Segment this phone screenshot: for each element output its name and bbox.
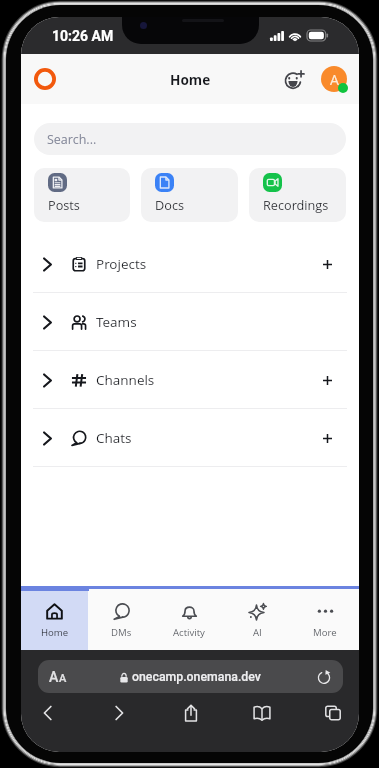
- button[interactable]: Share: [177, 699, 204, 726]
- button[interactable]: Chats: [21, 409, 359, 466]
- staticText: Search...: [47, 131, 97, 148]
- button[interactable]: Search...: [34, 123, 346, 155]
- staticText: A: [59, 672, 67, 685]
- button[interactable]: Teams: [21, 293, 359, 350]
- button[interactable]: Add Chats: [314, 425, 340, 451]
- staticText: Chats: [96, 429, 132, 447]
- staticText: Channels: [96, 371, 155, 389]
- button[interactable]: Bookmarks: [248, 699, 275, 726]
- button[interactable]: Docs: [141, 168, 238, 222]
- staticText: Home: [41, 626, 69, 639]
- button[interactable]: Add Projects: [314, 251, 340, 277]
- button[interactable]: Back: [34, 699, 61, 726]
- button[interactable]: Home: [21, 589, 88, 650]
- button[interactable]: Forward: [105, 699, 132, 726]
- button[interactable]: AI: [223, 589, 291, 650]
- button[interactable]: Channels: [21, 351, 359, 408]
- staticText: DMs: [111, 626, 132, 639]
- staticText: Projects: [96, 255, 147, 273]
- button[interactable]: DMs: [88, 589, 155, 650]
- staticText: More: [313, 626, 337, 639]
- staticText: 10:26 AM: [52, 28, 114, 44]
- staticText: onecamp.onemana.dev: [132, 670, 261, 684]
- button[interactable]: Add Channels: [314, 367, 340, 393]
- button[interactable]: Logo: [27, 61, 63, 97]
- staticText: AI: [253, 626, 262, 639]
- staticText: Activity: [173, 626, 205, 639]
- button[interactable]: Activity: [155, 589, 223, 650]
- staticText: Home: [170, 70, 211, 89]
- button[interactable]: Profile: [319, 64, 349, 94]
- staticText: A: [330, 70, 339, 89]
- button[interactable]: Posts: [34, 168, 130, 222]
- button[interactable]: A: [38, 660, 343, 693]
- staticText: Docs: [155, 196, 185, 213]
- staticText: Recordings: [263, 196, 329, 213]
- button[interactable]: Projects: [21, 235, 359, 292]
- button[interactable]: Tabs: [319, 699, 346, 726]
- staticText: A: [49, 669, 59, 685]
- button[interactable]: More: [291, 589, 359, 650]
- staticText: Teams: [96, 313, 137, 331]
- staticText: Posts: [48, 196, 80, 213]
- button[interactable]: Recordings: [249, 168, 346, 222]
- button[interactable]: Add reaction: [280, 65, 308, 93]
- button[interactable]: Reload: [313, 666, 335, 688]
